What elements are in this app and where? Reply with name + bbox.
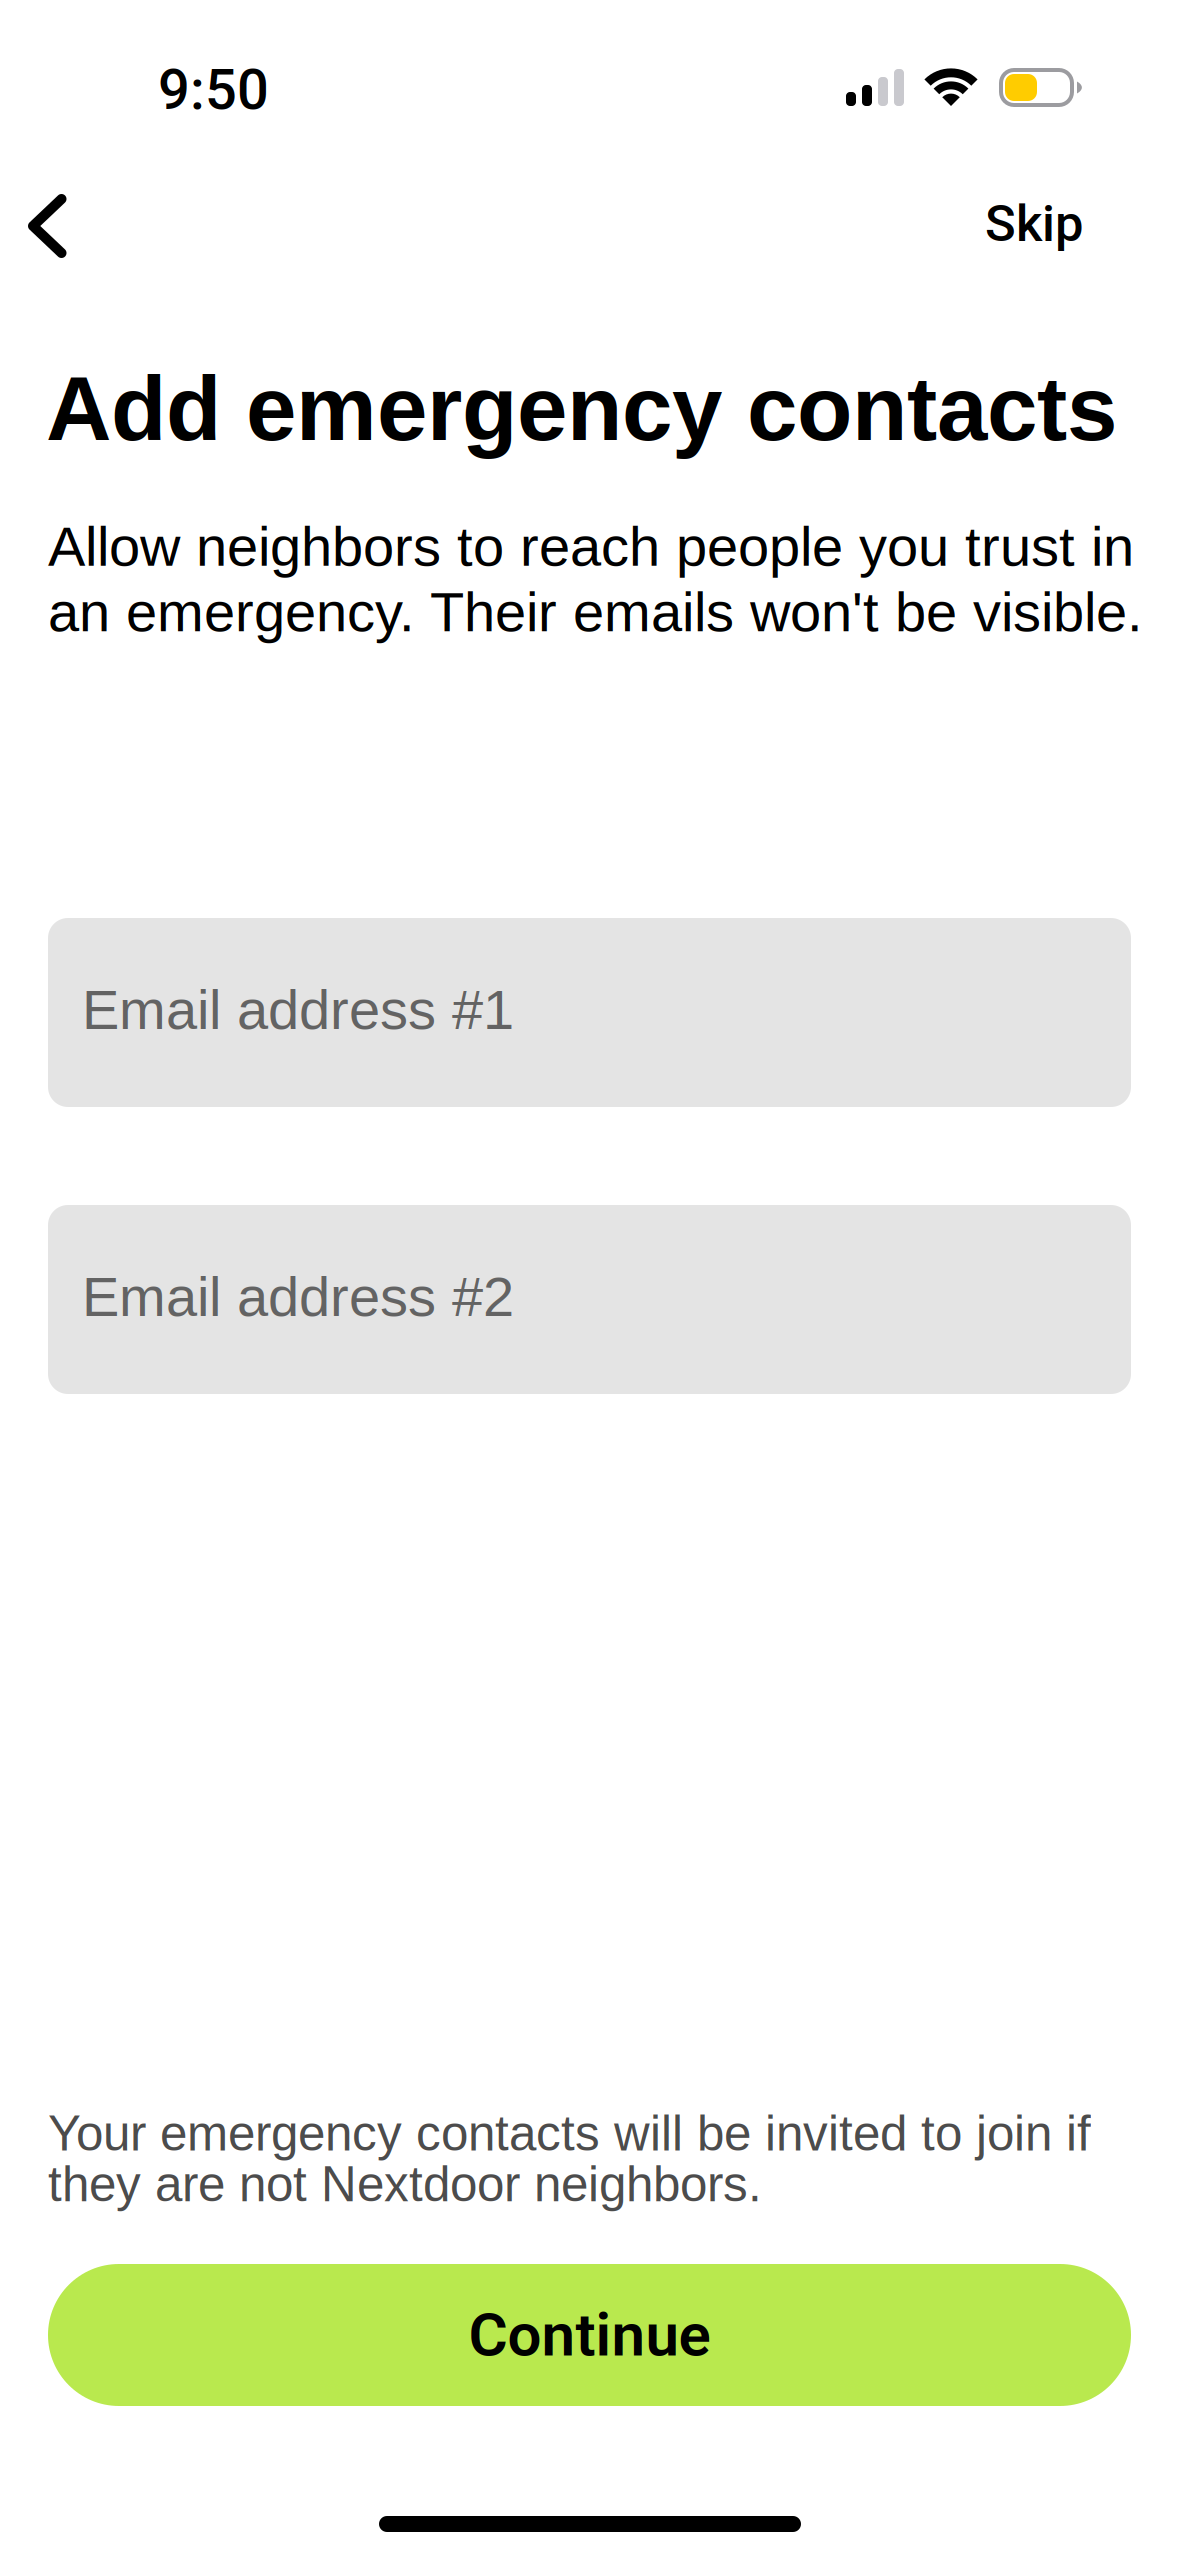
staticText: Email address #1 [82,978,514,1041]
button[interactable]: Continue [48,2264,1131,2406]
staticText: Skip [985,194,1083,253]
staticText: Your emergency contacts will be invited … [48,2108,1091,2209]
button[interactable]: Back [0,166,116,286]
staticText: Allow neighbors to reach people you trus… [48,515,1143,643]
staticText: Continue [468,2300,710,2370]
staticText: 9:50 [158,57,269,123]
staticText: Add emergency contacts [46,358,1117,459]
button[interactable]: Email address #2 [48,1205,1131,1394]
button[interactable]: Skip [931,159,1177,288]
staticText: Email address #2 [82,1265,514,1328]
button[interactable]: Email address #1 [48,918,1131,1107]
